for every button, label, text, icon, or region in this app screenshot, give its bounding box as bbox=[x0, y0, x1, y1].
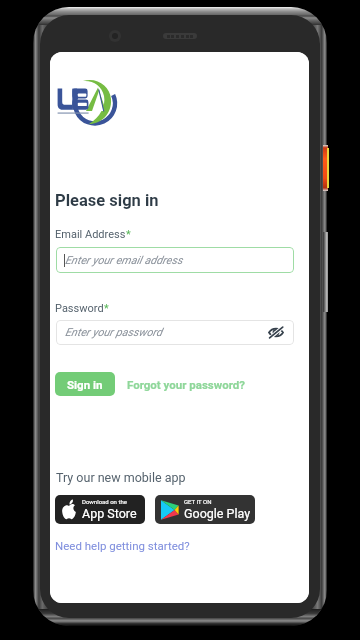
staticText: * bbox=[126, 228, 131, 241]
button[interactable]: Get it on Google Play bbox=[155, 495, 255, 524]
staticText: GET IT ON bbox=[184, 498, 212, 505]
staticText: Sign in bbox=[67, 378, 103, 391]
staticText: Google Play bbox=[184, 506, 251, 521]
button[interactable]: Forgot your password? bbox=[127, 374, 246, 395]
staticText: Try our new mobile app bbox=[56, 470, 186, 485]
button[interactable]: Enter your email address bbox=[56, 247, 294, 273]
staticText: * bbox=[104, 302, 109, 315]
staticText: Enter your email address bbox=[65, 254, 183, 267]
staticText: Please sign in bbox=[55, 191, 159, 210]
button[interactable]: Need help getting started? bbox=[55, 539, 190, 552]
staticText: Need help getting started? bbox=[55, 539, 190, 552]
staticText: Email Address bbox=[55, 228, 126, 241]
staticText: Forgot your password? bbox=[127, 378, 246, 391]
staticText: Download on the bbox=[82, 498, 127, 505]
staticText: App Store bbox=[82, 506, 137, 521]
button[interactable]: Enter your password bbox=[56, 320, 294, 345]
button[interactable]: Sign in bbox=[55, 372, 115, 396]
button[interactable]: Download on the App Store bbox=[55, 495, 145, 524]
button[interactable]: Show password bbox=[268, 326, 284, 339]
staticText: Password bbox=[55, 302, 104, 315]
staticText: Enter your password bbox=[65, 326, 163, 339]
